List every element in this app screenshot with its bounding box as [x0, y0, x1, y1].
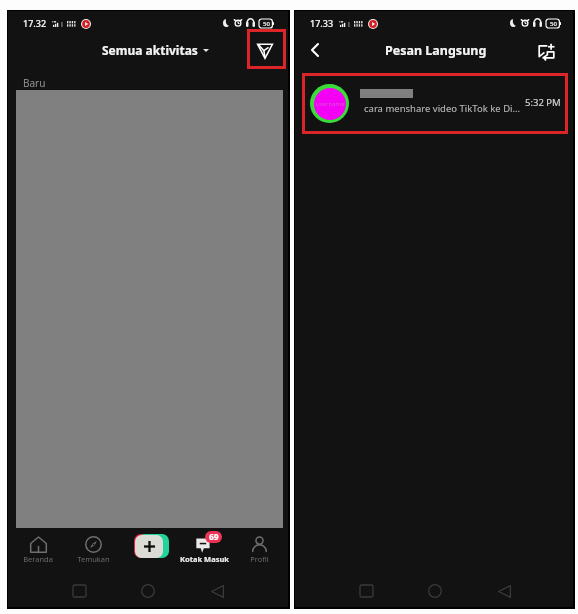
- button[interactable]: Back: [302, 37, 328, 63]
- staticText: Semua aktivitas: [102, 42, 198, 58]
- button[interactable]: Beranda: [11, 532, 65, 560]
- staticText: 17.32: [23, 17, 47, 29]
- staticText: 50: [550, 20, 557, 28]
- staticText: Pesan Langsung: [385, 42, 487, 58]
- button[interactable]: Back: [486, 582, 522, 600]
- button[interactable]: New message: [532, 37, 560, 65]
- button[interactable]: Home: [417, 582, 453, 600]
- staticText: 69: [209, 531, 219, 543]
- staticText: 50: [263, 20, 270, 28]
- staticText: 17.33: [310, 17, 334, 29]
- staticText: Temukan: [77, 554, 110, 564]
- button[interactable]: Recents: [61, 582, 97, 600]
- staticText: Profil: [250, 554, 269, 564]
- button[interactable]: Create: [132, 534, 166, 558]
- button[interactable]: Filter: [247, 29, 286, 69]
- staticText: Kotak Masuk: [180, 554, 229, 564]
- button[interactable]: username: [302, 73, 568, 134]
- staticText: username: [316, 100, 345, 108]
- button[interactable]: Back: [199, 582, 235, 600]
- button[interactable]: Temukan: [66, 532, 120, 560]
- button[interactable]: 69: [177, 532, 231, 560]
- staticText: Beranda: [23, 554, 53, 564]
- staticText: Baru: [23, 76, 46, 90]
- button[interactable]: Profil: [232, 532, 286, 560]
- button[interactable]: Home: [130, 582, 166, 600]
- button[interactable]: Recents: [348, 582, 384, 600]
- button[interactable]: Semua aktivitas: [102, 42, 209, 58]
- staticText: cara menshare video TikTok ke Di…: [364, 102, 521, 115]
- staticText: 5:32 PM: [525, 96, 561, 109]
